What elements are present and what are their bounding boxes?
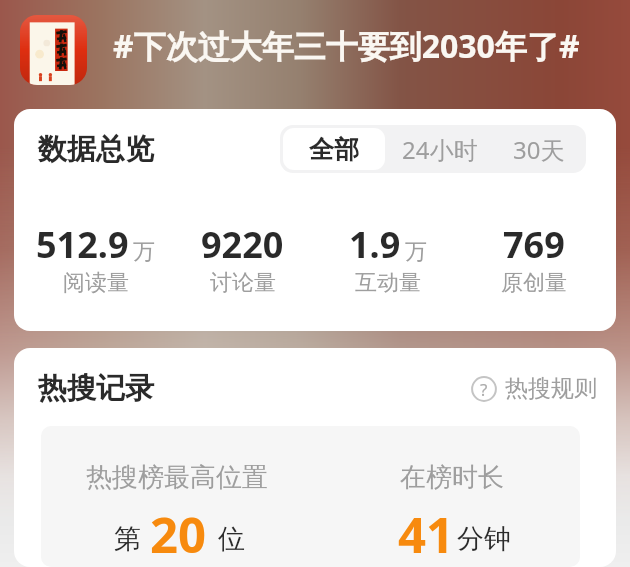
staticText: 分钟 [457, 522, 511, 556]
staticText: 阅读量 [63, 269, 129, 297]
staticText: 20 [150, 501, 207, 567]
staticText: ? [480, 378, 488, 401]
staticText: 第 [114, 522, 141, 556]
staticText: 原创量 [501, 269, 567, 297]
staticText: 万 [133, 238, 155, 266]
staticText: 512.9 [36, 220, 129, 269]
staticText: 数据总览 [38, 131, 154, 168]
staticText: 万 [405, 238, 427, 266]
staticText: 位 [218, 522, 245, 556]
button[interactable]: 769 [501, 220, 567, 297]
staticText: 30天 [513, 133, 565, 166]
button[interactable]: 热搜榜最高位置 [41, 426, 310, 567]
button[interactable]: 24小时 [388, 125, 492, 173]
staticText: 769 [503, 220, 565, 269]
staticText: 热搜榜最高位置 [86, 461, 268, 494]
other: Hot search rules [471, 376, 497, 402]
button[interactable]: 全部 [283, 128, 385, 170]
staticText: 9220 [201, 220, 284, 269]
staticText: 热搜规则 [505, 374, 597, 403]
button[interactable]: App icon [20, 15, 87, 85]
button[interactable]: 9220 [201, 220, 284, 297]
staticText: #下次过大年三十要到2030年了# [113, 24, 580, 68]
staticText: 在榜时长 [400, 461, 504, 494]
button[interactable]: 30天 [492, 125, 586, 173]
button[interactable]: 512.9 [36, 220, 155, 297]
button[interactable]: 在榜时长 [310, 426, 580, 567]
staticText: 24小时 [402, 133, 478, 166]
button[interactable]: 1.9 [349, 220, 427, 297]
staticText: 讨论量 [210, 269, 276, 297]
staticText: 1.9 [349, 220, 401, 269]
staticText: 互动量 [355, 269, 421, 297]
button[interactable]: Hot search rules [465, 374, 597, 403]
staticText: 41 [398, 501, 455, 567]
staticText: 热搜记录 [38, 370, 154, 407]
staticText: 全部 [309, 134, 359, 165]
